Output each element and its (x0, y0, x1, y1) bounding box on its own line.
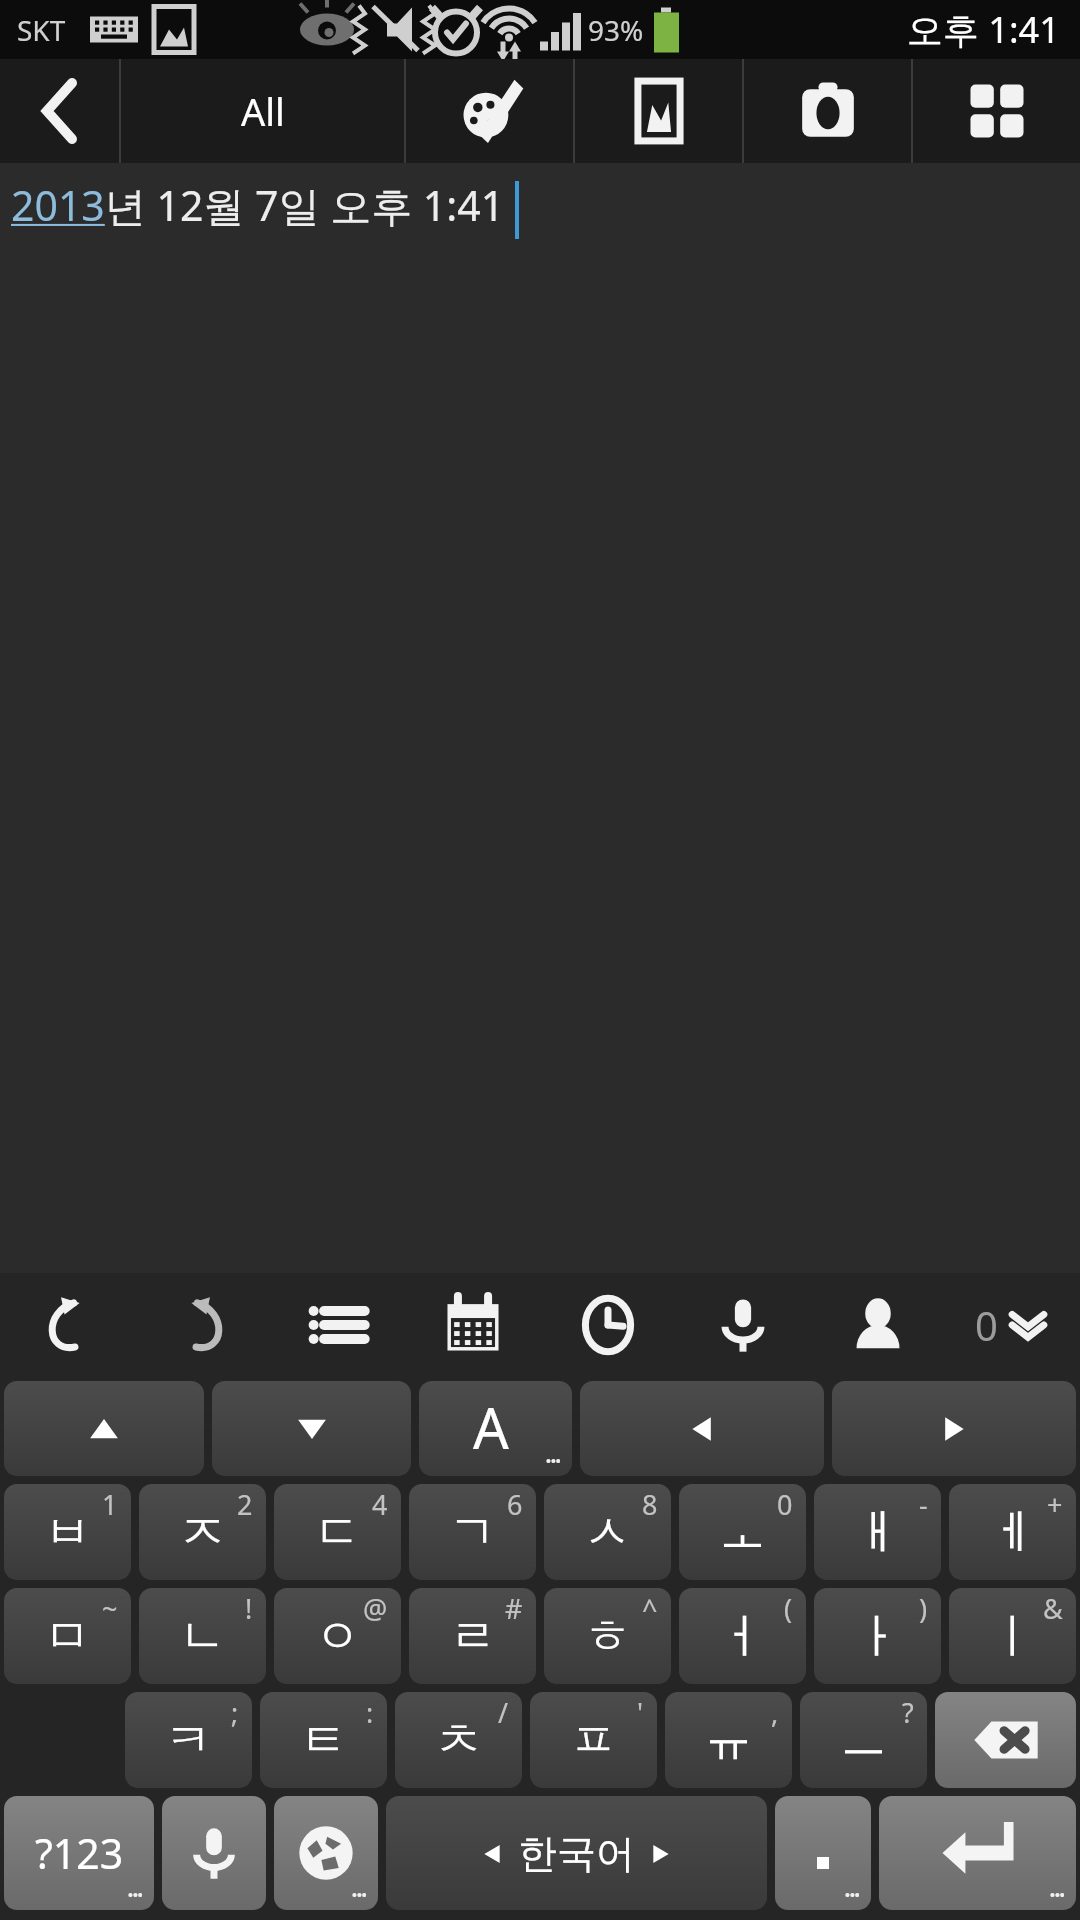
staticText: ㅣ (989, 1607, 1036, 1666)
button[interactable]: ㅏ (814, 1588, 941, 1684)
staticText: ㅐ (854, 1503, 901, 1562)
staticText: ••• (845, 1886, 860, 1904)
staticText: ㅊ (435, 1711, 482, 1770)
staticText: SKT (17, 11, 66, 49)
staticText: 한국어 (518, 1829, 635, 1878)
staticText: 오후 1:41 (907, 5, 1060, 54)
staticText: # (505, 1590, 523, 1627)
staticText: ••• (1050, 1886, 1065, 1904)
button[interactable]: ㅋ (125, 1692, 252, 1788)
staticText: ••• (546, 1452, 561, 1470)
staticText: ㅏ (854, 1607, 901, 1666)
button[interactable]: ㅎ (544, 1588, 671, 1684)
button[interactable]: ㅔ (949, 1484, 1076, 1580)
staticText: ㅔ (989, 1503, 1036, 1562)
button[interactable]: ㅅ (544, 1484, 671, 1580)
staticText: , (771, 1694, 779, 1731)
button[interactable]: ㅣ (949, 1588, 1076, 1684)
button[interactable]: ㄷ (274, 1484, 401, 1580)
button[interactable]: ㅗ (679, 1484, 806, 1580)
staticText: ~ (102, 1590, 118, 1627)
button[interactable]: ㅂ (4, 1484, 131, 1580)
button[interactable]: Image (575, 59, 742, 163)
staticText: 2013년 12월 7일 오후 1:41 (11, 177, 515, 233)
button[interactable]: ?123 (4, 1796, 154, 1910)
staticText: : (366, 1694, 374, 1731)
button[interactable]: Text options (419, 1381, 572, 1476)
button[interactable]: Insert time (540, 1273, 675, 1377)
staticText: 8 (642, 1486, 658, 1523)
staticText: All (241, 85, 285, 137)
button[interactable]: All (121, 59, 404, 163)
button[interactable]: Bulleted list (270, 1273, 405, 1377)
staticText: / (498, 1694, 509, 1731)
staticText: 4 (372, 1486, 388, 1523)
staticText: ㅁ (44, 1607, 91, 1666)
staticText: ' (637, 1694, 644, 1731)
staticText: ㄱ (449, 1503, 496, 1562)
staticText: ㅗ (719, 1503, 766, 1562)
button[interactable]: ㄴ (139, 1588, 266, 1684)
button[interactable]: Redo (135, 1273, 270, 1377)
staticText: & (1043, 1590, 1063, 1627)
button[interactable]: Camera (744, 59, 911, 163)
button[interactable]: More options (913, 59, 1080, 163)
staticText: ••• (352, 1886, 367, 1904)
button[interactable]: Period (775, 1796, 871, 1910)
button[interactable]: ㄱ (409, 1484, 536, 1580)
staticText: ( (784, 1590, 793, 1627)
button[interactable]: Move right (832, 1381, 1076, 1476)
button[interactable]: Voice input (675, 1273, 810, 1377)
staticText: ?123 (35, 1825, 124, 1881)
staticText: 6 (507, 1486, 523, 1523)
button[interactable]: Change input language (274, 1796, 378, 1910)
staticText: + (1047, 1486, 1063, 1523)
staticText: 0 (777, 1486, 793, 1523)
button[interactable]: Drawing (406, 59, 573, 163)
staticText: ^ (642, 1590, 658, 1627)
button[interactable]: Move up (4, 1381, 204, 1476)
staticText: @ (363, 1590, 388, 1627)
button[interactable]: ㅓ (679, 1588, 806, 1684)
button[interactable]: Move down (212, 1381, 411, 1476)
button[interactable]: ㅁ (4, 1588, 131, 1684)
button[interactable]: ㅌ (260, 1692, 387, 1788)
staticText: ㄴ (179, 1607, 226, 1666)
button[interactable]: ㅍ (530, 1692, 657, 1788)
staticText: ) (919, 1590, 928, 1627)
staticText: A (473, 1389, 509, 1465)
button[interactable]: Insert contact (810, 1273, 945, 1377)
button[interactable]: Enter (879, 1796, 1076, 1910)
staticText: 93% (588, 11, 644, 49)
button[interactable]: Move left (580, 1381, 824, 1476)
button[interactable]: Space (386, 1796, 767, 1910)
staticText: ; (231, 1694, 239, 1731)
button[interactable]: ㅐ (814, 1484, 941, 1580)
button[interactable]: ㅈ (139, 1484, 266, 1580)
staticText: ㅅ (584, 1503, 631, 1562)
button[interactable]: Backspace (935, 1692, 1076, 1788)
staticText: 1 (102, 1486, 118, 1523)
staticText: 0 (975, 1298, 998, 1352)
button[interactable]: Back (0, 59, 119, 163)
staticText: ㅡ (840, 1711, 887, 1770)
staticText: ㅋ (165, 1711, 212, 1770)
button[interactable]: Hide keyboard (945, 1273, 1080, 1377)
button[interactable]: Undo (0, 1273, 135, 1377)
staticText: 2 (237, 1486, 253, 1523)
staticText: ㄹ (449, 1607, 496, 1666)
button[interactable]: Voice input (162, 1796, 266, 1910)
staticText: ? (902, 1694, 914, 1731)
button[interactable]: ㄹ (409, 1588, 536, 1684)
staticText: - (919, 1486, 928, 1523)
staticText: ㅍ (570, 1711, 617, 1770)
staticText: ㅌ (300, 1711, 347, 1770)
button[interactable]: ㅇ (274, 1588, 401, 1684)
staticText: ㅠ (705, 1711, 752, 1770)
staticText: ㅎ (584, 1607, 631, 1666)
button[interactable]: ㅠ (665, 1692, 792, 1788)
button[interactable]: Insert date (405, 1273, 540, 1377)
staticText: ㄷ (314, 1503, 361, 1562)
button[interactable]: ㅡ (800, 1692, 927, 1788)
button[interactable]: ㅊ (395, 1692, 522, 1788)
